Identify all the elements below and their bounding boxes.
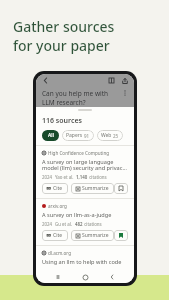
staticText: 2024 [42,221,53,227]
button[interactable]: Summarize [71,230,114,241]
button[interactable]: More options [121,89,129,97]
button[interactable]: Recent apps [53,272,63,282]
staticText: 25 [113,133,119,139]
staticText: Cite [53,185,63,192]
button[interactable]: Back [107,272,117,282]
staticText: Summarize [82,185,109,192]
staticText: citations [88,174,107,180]
button[interactable]: Papers [62,130,94,141]
button[interactable]: Summarize [71,183,114,194]
staticText: dl.acm.org [48,250,72,256]
button[interactable]: Split screen [107,76,116,85]
staticText: All [48,132,54,139]
staticText: High Confidence Computing [48,150,110,156]
staticText: Summarize [82,232,109,239]
staticText: 91 [84,133,90,139]
staticText: Gu et al. [55,221,73,227]
staticText: 2024 [42,174,53,180]
staticText: Yao et al. [55,174,74,180]
staticText: 482 [75,221,83,227]
button[interactable]: Back [41,76,50,85]
button[interactable]: All [42,130,59,141]
button[interactable]: Cite [42,230,68,241]
staticText: Web [101,132,112,139]
staticText: for your paper [13,36,110,55]
button[interactable]: Share [120,76,129,85]
button[interactable]: arxiv.org [36,199,134,245]
staticText: A survey on llm-as-a-judge [42,211,112,219]
staticText: LLM research? [42,98,86,107]
staticText: 1,140 [76,174,88,180]
button[interactable]: dl.acm.org [36,246,134,270]
staticText: A survey on large language model (llm) s… [42,158,128,172]
staticText: 116 sources [42,116,83,126]
button[interactable]: Home [80,272,90,282]
button[interactable]: Web [97,130,123,141]
staticText: arxiv.org [48,203,67,209]
button[interactable]: High Confidence Computing [36,146,134,198]
staticText: Papers [66,132,83,139]
button[interactable]: Saved [114,230,128,241]
staticText: Can you help me with [42,89,109,98]
button[interactable]: Cite [42,183,68,194]
staticText: citations [83,221,102,227]
staticText: Cite [53,232,63,239]
staticText: Using an llm to help with code understan… [42,258,128,266]
staticText: Gather sources [13,17,115,36]
button[interactable]: Save [114,183,128,194]
